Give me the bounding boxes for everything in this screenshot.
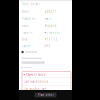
- staticText: Place order: [37, 93, 53, 97]
- button[interactable]: Status: [19, 22, 72, 29]
- button[interactable]: Use another card: [22, 85, 71, 93]
- button[interactable]: Total: [19, 36, 72, 43]
- button[interactable]: [19, 50, 72, 54]
- staticText: Payment: [22, 31, 33, 34]
- staticText: Order: [22, 10, 30, 13]
- staticText: Card was declined: [24, 80, 49, 83]
- staticText: Payment failed: [26, 73, 46, 76]
- staticText: $131.12: [45, 38, 58, 41]
- staticText: Placed on: [22, 17, 36, 20]
- staticText: Visa 4242: [47, 31, 61, 34]
- button[interactable]: Payment: [19, 29, 72, 36]
- staticText: Shipped: [45, 24, 57, 27]
- button[interactable]: Carrier: [19, 43, 72, 50]
- button[interactable]: Place order: [34, 93, 56, 97]
- staticText: Status: [22, 24, 29, 27]
- button[interactable]: Placed on: [19, 15, 72, 22]
- button[interactable]: Order: [19, 8, 72, 15]
- staticText: UPS: [45, 44, 50, 48]
- staticText: Carrier: [22, 44, 31, 48]
- staticText: #48217: [45, 10, 57, 13]
- staticText: Order details: [22, 2, 40, 6]
- staticText: Use another card: [24, 87, 47, 91]
- staticText: Total: [22, 38, 28, 41]
- staticText: Mar 4: [45, 17, 52, 20]
- button[interactable]: Card was declined: [22, 78, 71, 85]
